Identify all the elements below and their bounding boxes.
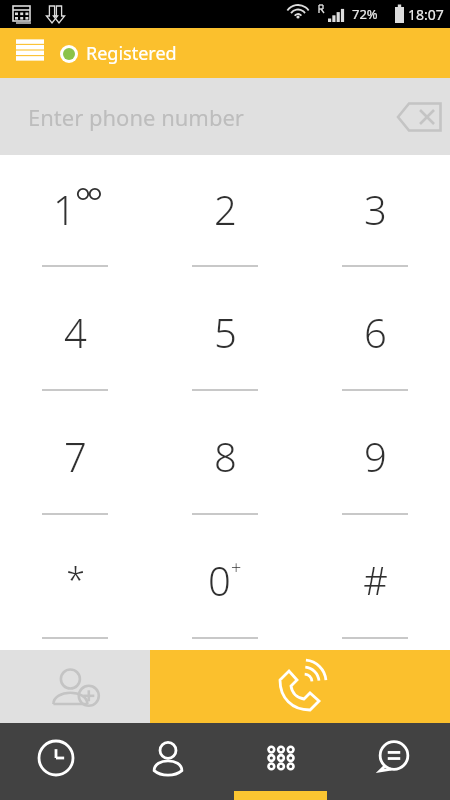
button[interactable]: 5: [150, 278, 300, 402]
staticText: *: [66, 557, 85, 603]
staticText: 3: [364, 182, 387, 236]
button[interactable]: 6: [300, 278, 450, 402]
button[interactable]: Enter phone number: [0, 78, 450, 155]
staticText: 7: [64, 429, 87, 483]
button[interactable]: Keypad: [224, 723, 337, 800]
button[interactable]: 4: [0, 278, 150, 402]
staticText: 5: [214, 305, 237, 359]
button[interactable]: 8: [150, 402, 300, 526]
staticText: 0: [208, 553, 231, 607]
staticText: 8: [214, 429, 237, 483]
staticText: 1: [53, 182, 76, 236]
staticText: Enter phone number: [28, 102, 244, 132]
staticText: Registered: [86, 41, 177, 66]
button[interactable]: 2: [150, 155, 300, 278]
button[interactable]: Add contact: [0, 650, 150, 723]
button[interactable]: Messages: [337, 723, 450, 800]
staticText: 4: [64, 305, 87, 359]
button[interactable]: 9: [300, 402, 450, 526]
button[interactable]: Contacts: [112, 723, 224, 800]
button[interactable]: Recent calls: [0, 723, 112, 800]
button[interactable]: Registered: [60, 41, 177, 66]
staticText: #: [363, 554, 388, 606]
button[interactable]: #: [300, 526, 450, 650]
staticText: 72%: [352, 5, 378, 23]
button[interactable]: 7: [0, 402, 150, 526]
button[interactable]: Backspace: [390, 87, 450, 147]
staticText: 18:07: [408, 5, 444, 24]
staticText: 2: [214, 182, 237, 236]
button[interactable]: 0: [150, 526, 300, 650]
button[interactable]: Open navigation menu: [0, 28, 60, 78]
staticText: 6: [364, 305, 387, 359]
button[interactable]: 1: [0, 155, 150, 278]
button[interactable]: 3: [300, 155, 450, 278]
button[interactable]: *: [0, 526, 150, 650]
button[interactable]: Call: [150, 650, 450, 723]
staticText: +: [231, 555, 242, 580]
staticText: 9: [364, 429, 387, 483]
